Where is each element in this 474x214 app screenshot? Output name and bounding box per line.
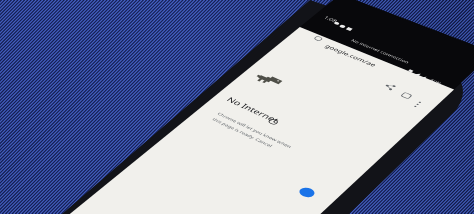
other: Phone on blue fabric showing Chrome No I…: [0, 0, 474, 214]
